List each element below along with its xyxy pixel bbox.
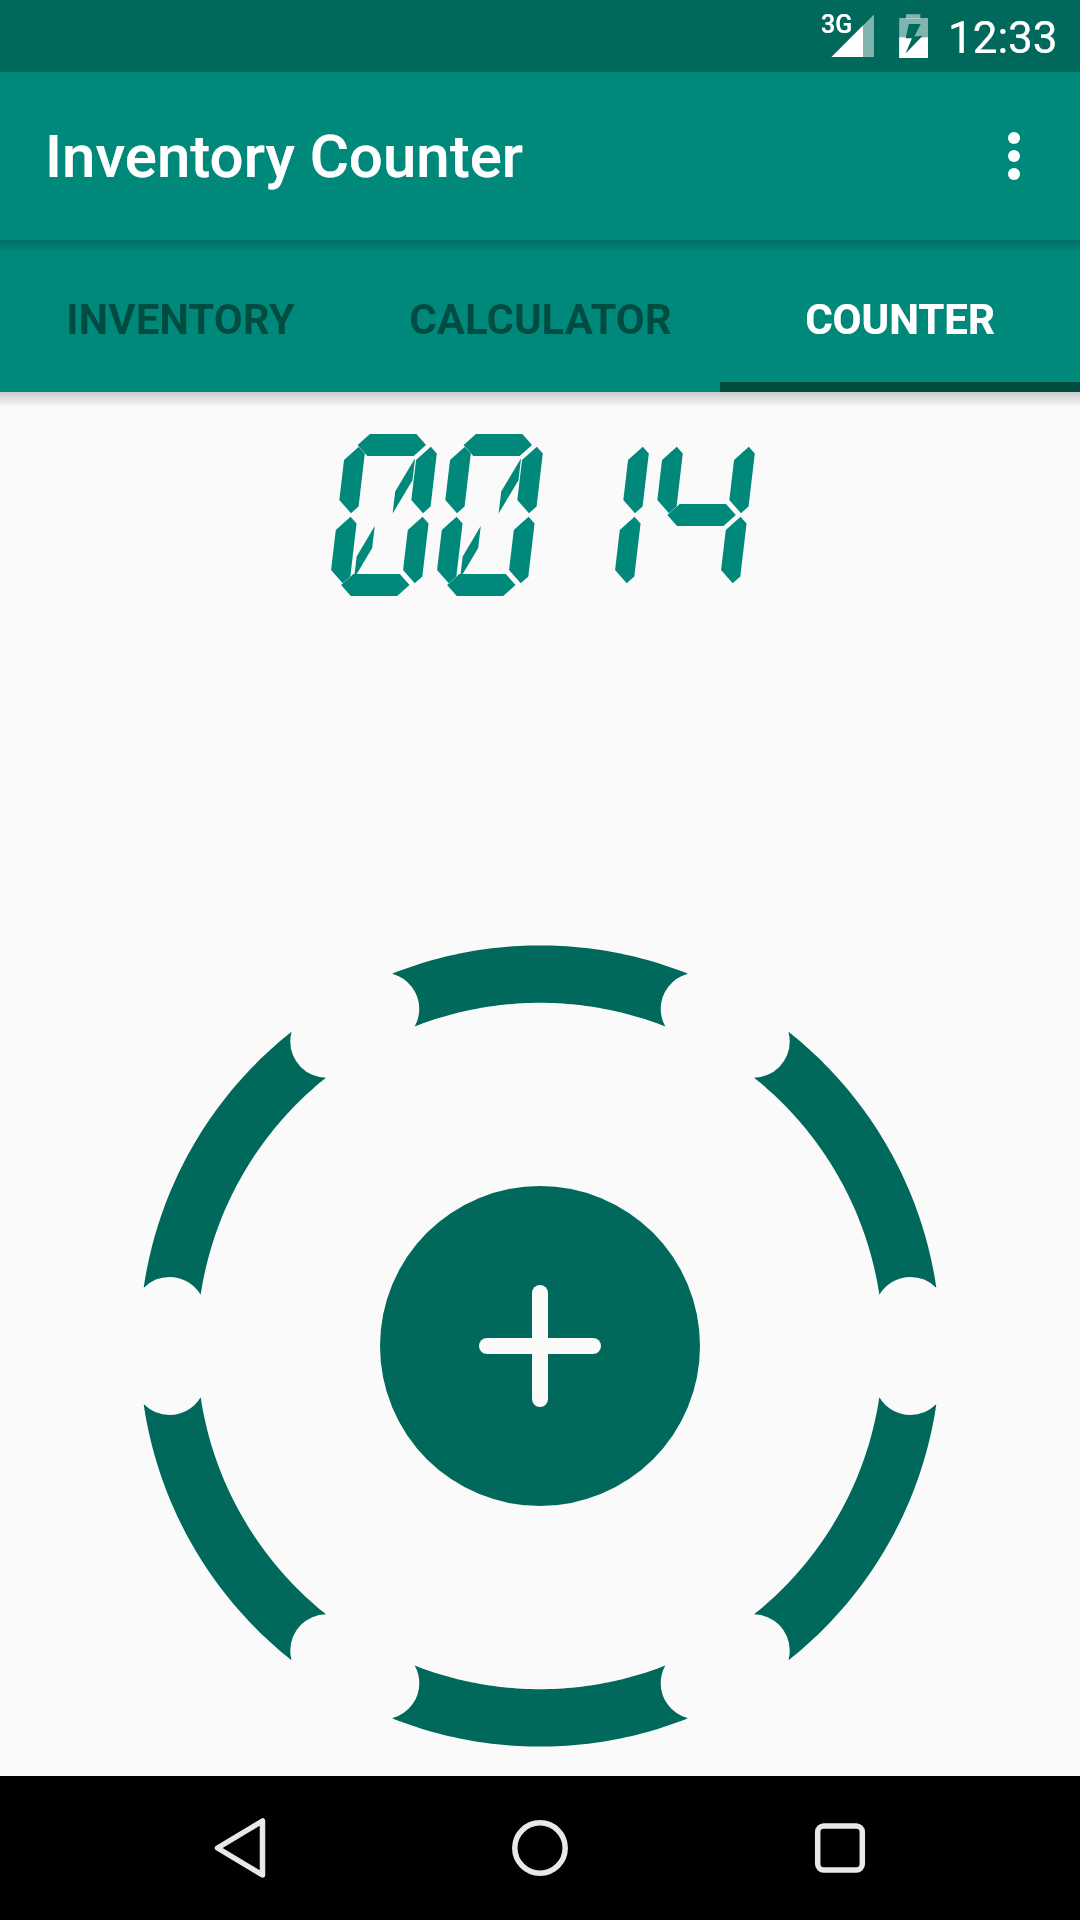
staticText: COUNTER bbox=[805, 295, 995, 344]
button[interactable]: COUNTER bbox=[720, 240, 1080, 392]
button[interactable]: INVENTORY bbox=[0, 240, 360, 392]
button[interactable]: More options bbox=[948, 72, 1080, 240]
staticText: CALCULATOR bbox=[409, 295, 672, 344]
staticText: Inventory Counter bbox=[45, 121, 523, 191]
button[interactable]: CALCULATOR bbox=[360, 240, 720, 392]
button[interactable]: Recent apps bbox=[768, 1776, 912, 1920]
staticText: 12:33 bbox=[948, 12, 1058, 64]
button[interactable]: Back bbox=[168, 1776, 312, 1920]
button[interactable]: Home bbox=[468, 1776, 612, 1920]
button[interactable]: Add one to the counter bbox=[380, 1186, 700, 1506]
staticText: 3G bbox=[821, 10, 853, 39]
staticText: INVENTORY bbox=[66, 295, 295, 344]
